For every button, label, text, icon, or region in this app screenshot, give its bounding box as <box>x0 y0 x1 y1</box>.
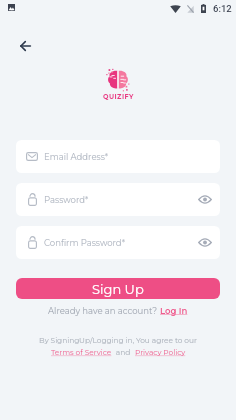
button[interactable]: Sign Up <box>16 278 220 299</box>
staticText: By SigningUp/Logging in, You agree to ou… <box>39 336 197 345</box>
staticText: Email Address* <box>44 152 109 162</box>
staticText: Already have an account? <box>48 306 160 316</box>
staticText: Log In <box>160 306 188 316</box>
button[interactable]: Log In <box>160 306 188 316</box>
staticText: QUIZIFY <box>103 93 134 101</box>
button[interactable]: Email Address* <box>16 140 220 173</box>
button[interactable]: Privacy Policy <box>135 348 186 357</box>
staticText: Confirm Password* <box>44 238 126 248</box>
staticText: Terms of Service <box>51 348 112 357</box>
staticText: Password* <box>44 195 89 205</box>
button[interactable]: Confirm Password* <box>16 226 220 259</box>
staticText: Sign Up <box>92 281 144 297</box>
staticText: Privacy Policy <box>135 348 186 357</box>
staticText: 6:12 <box>213 3 232 14</box>
button[interactable]: Terms of Service <box>51 348 112 357</box>
button[interactable]: Toggle password visibility <box>197 236 212 249</box>
button[interactable]: Password* <box>16 183 220 216</box>
button[interactable]: Toggle password visibility <box>197 193 212 206</box>
staticText: and <box>112 348 135 357</box>
button[interactable]: Back <box>13 34 37 58</box>
